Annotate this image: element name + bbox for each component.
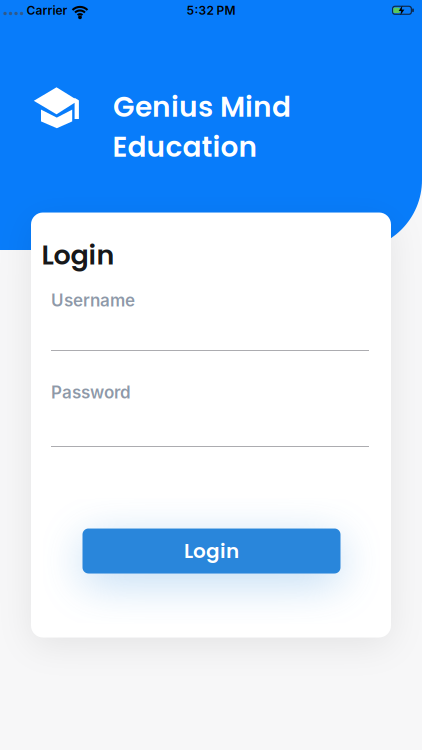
button[interactable]: Username — [51, 290, 369, 351]
staticText: Genius Mind — [113, 87, 291, 127]
button[interactable]: Password — [51, 382, 369, 447]
staticText: Carrier — [26, 3, 67, 18]
staticText: Password — [51, 382, 131, 403]
button[interactable]: Login — [82, 528, 340, 573]
staticText: Login — [41, 236, 114, 274]
staticText: Login — [184, 537, 239, 565]
staticText: Education — [112, 127, 257, 167]
staticText: 5:32 PM — [186, 3, 235, 18]
staticText: Username — [51, 290, 135, 311]
